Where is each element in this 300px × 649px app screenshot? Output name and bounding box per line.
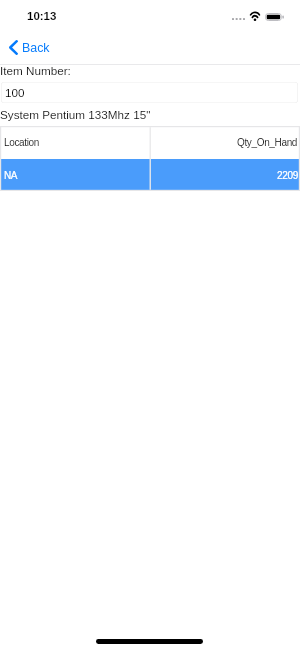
button[interactable]: Location	[1, 127, 149, 158]
staticText: 100	[5, 86, 25, 99]
button[interactable]: Back	[0, 36, 59, 59]
button[interactable]: Home	[96, 639, 203, 644]
button[interactable]: NA	[1, 159, 149, 190]
staticText: Location	[4, 137, 40, 148]
button[interactable]: Qty_On_Hand	[150, 127, 298, 158]
staticText: System Pentium 133Mhz 15"	[0, 108, 151, 121]
button[interactable]: 2209	[150, 159, 298, 190]
button[interactable]: 100	[1, 82, 298, 103]
staticText: Item Number:	[0, 64, 71, 77]
staticText: Back	[22, 41, 50, 55]
other: Back	[9, 40, 18, 55]
staticText: 10:13	[27, 10, 57, 23]
staticText: Qty_On_Hand	[237, 137, 298, 148]
staticText: 2209	[277, 170, 298, 181]
staticText: NA	[4, 170, 18, 181]
